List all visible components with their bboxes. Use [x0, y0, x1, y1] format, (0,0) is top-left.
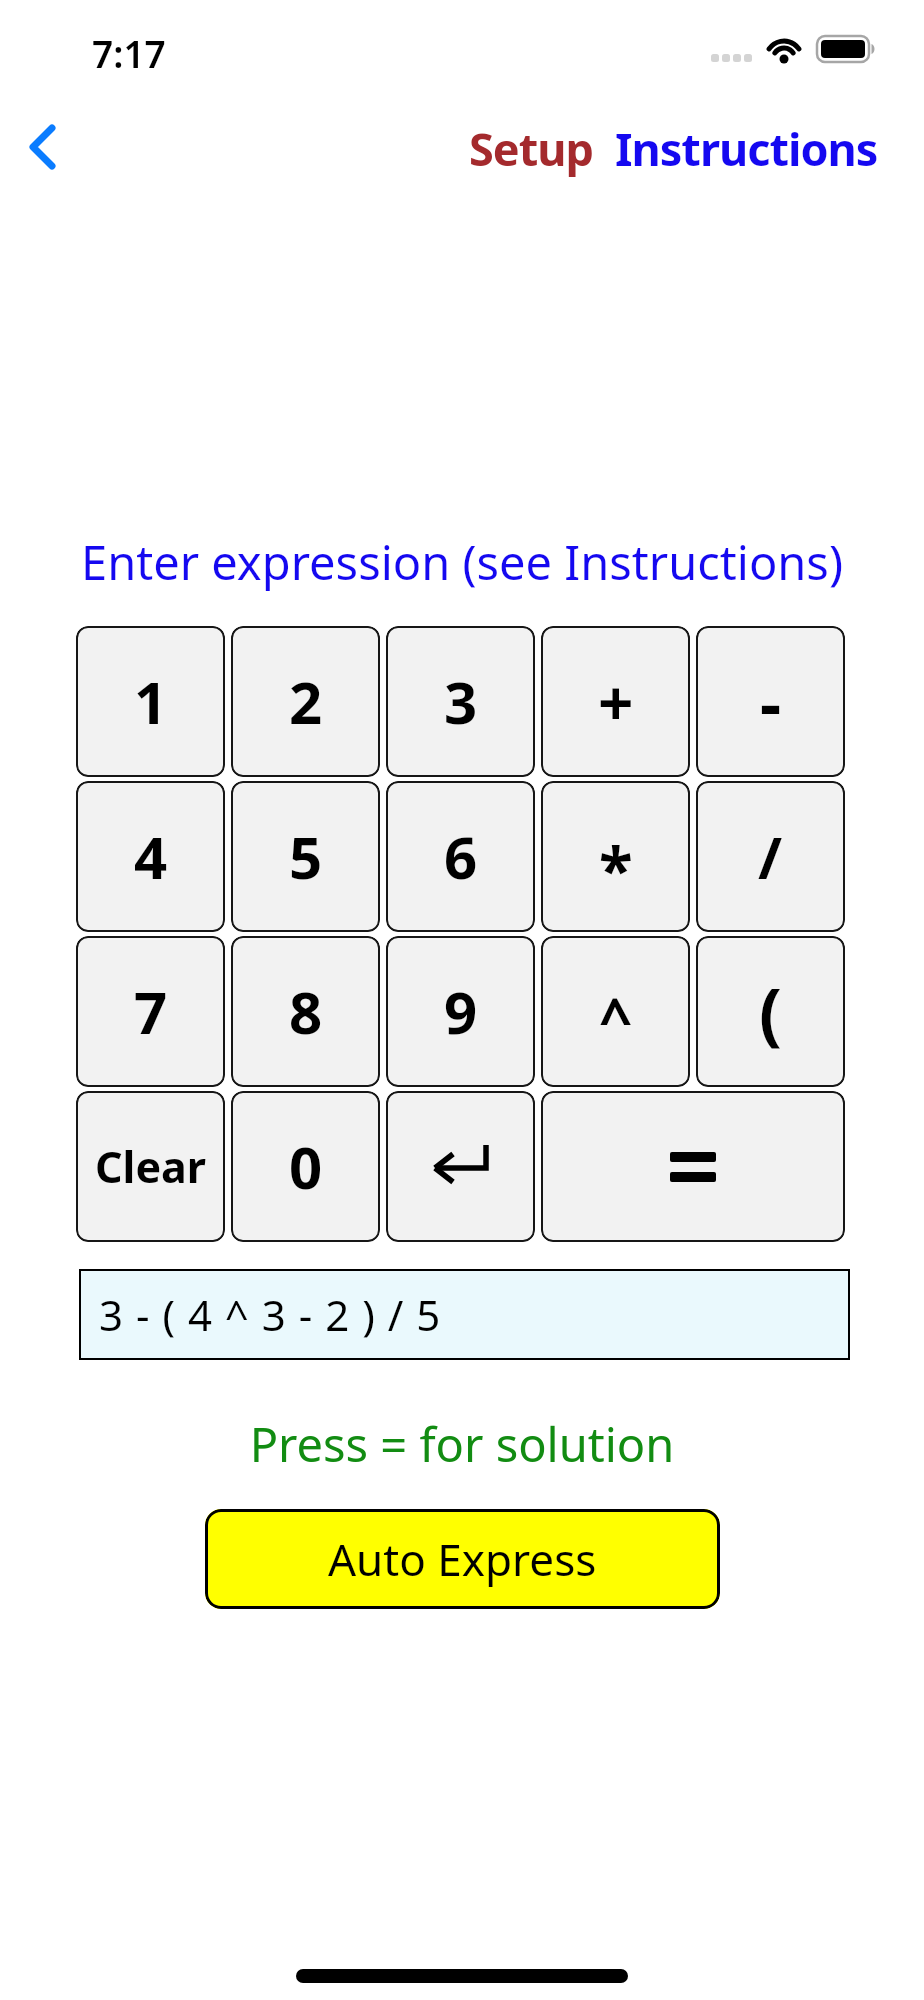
button[interactable]: 4 [76, 781, 225, 932]
button[interactable]: 1 [76, 626, 225, 777]
staticText: Clear [95, 1137, 207, 1196]
staticText: 7 [134, 972, 168, 1051]
button[interactable]: / [696, 781, 845, 932]
button[interactable]: 3 [386, 626, 535, 777]
staticText: ^ [599, 978, 633, 1057]
staticText: ( [759, 965, 783, 1058]
staticText: 9 [444, 972, 478, 1051]
button[interactable]: ( [696, 936, 845, 1087]
staticText: 6 [444, 817, 478, 896]
button[interactable]: 6 [386, 781, 535, 932]
staticText: 2 [289, 662, 323, 741]
staticText: 0 [289, 1127, 323, 1206]
button[interactable] [541, 1091, 845, 1242]
button[interactable]: 2 [231, 626, 380, 777]
button[interactable]: Clear [76, 1091, 225, 1242]
staticText: - [760, 657, 782, 747]
staticText: 3 - ( 4 ^ 3 - 2 ) / 5 [99, 1286, 442, 1343]
staticText: Auto Express [328, 1529, 597, 1589]
button[interactable]: Auto Express [205, 1509, 720, 1609]
button[interactable] [386, 1091, 535, 1242]
staticText: + [598, 660, 634, 744]
button[interactable]: Setup [469, 118, 593, 179]
button[interactable]: * [541, 781, 690, 932]
button[interactable]: ^ [541, 936, 690, 1087]
staticText: / [758, 817, 783, 896]
button[interactable]: 3 - ( 4 ^ 3 - 2 ) / 5 [79, 1269, 850, 1360]
button[interactable]: - [696, 626, 845, 777]
staticText: 7:17 [92, 28, 166, 78]
staticText: 4 [134, 817, 168, 896]
button[interactable]: 0 [231, 1091, 380, 1242]
button[interactable] [18, 120, 66, 174]
staticText: Press = for solution [0, 1412, 924, 1476]
staticText: 8 [289, 972, 323, 1051]
button[interactable]: 8 [231, 936, 380, 1087]
staticText: 1 [134, 662, 168, 741]
button[interactable]: + [541, 626, 690, 777]
button[interactable]: 7 [76, 936, 225, 1087]
button[interactable]: 5 [231, 781, 380, 932]
button[interactable]: 9 [386, 936, 535, 1087]
staticText: 3 [444, 662, 478, 741]
staticText: 5 [289, 817, 323, 896]
button[interactable]: Instructions [615, 118, 878, 179]
staticText: Enter expression (see Instructions) [0, 530, 924, 594]
staticText: * [599, 827, 633, 911]
